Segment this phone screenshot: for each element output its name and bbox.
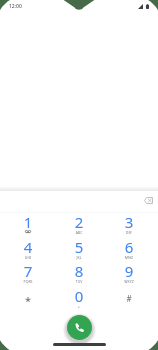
button[interactable]: 4 [3, 236, 53, 260]
staticText: GHI [3, 255, 53, 260]
button[interactable]: 2 [54, 211, 104, 235]
button[interactable]: # [104, 285, 154, 309]
staticText: 7 [3, 261, 53, 281]
button[interactable]: 5 [54, 236, 104, 260]
button[interactable]: * [3, 285, 53, 309]
staticText: MNO [104, 255, 154, 260]
button[interactable]: Call [67, 315, 92, 340]
staticText: 0 [54, 286, 104, 306]
staticText: PQRS [3, 279, 53, 284]
button[interactable]: 0 [54, 285, 104, 309]
button[interactable]: 6 [104, 236, 154, 260]
staticText: 3 [104, 212, 154, 232]
button[interactable]: 1 [3, 211, 53, 235]
staticText: ABC [54, 230, 104, 235]
staticText: JKL [54, 255, 104, 260]
button[interactable]: 9 [104, 260, 154, 284]
staticText: 4 [3, 237, 53, 257]
button[interactable]: 8 [54, 260, 104, 284]
staticText: 12:00 [9, 3, 22, 10]
staticText: 2 [54, 212, 104, 232]
button[interactable]: 3 [104, 211, 154, 235]
staticText: * [3, 293, 53, 308]
staticText: + [54, 304, 104, 309]
staticText: TUV [54, 279, 104, 284]
staticText: 9 [104, 261, 154, 281]
staticText: 1 [3, 212, 53, 232]
staticText: DEF [104, 230, 154, 235]
button[interactable]: 7 [3, 260, 53, 284]
staticText: 5 [54, 237, 104, 257]
staticText: 8 [54, 261, 104, 281]
button[interactable]: Backspace [140, 192, 157, 209]
staticText: 6 [104, 237, 154, 257]
staticText: WXYZ [104, 279, 154, 284]
staticText: # [104, 293, 154, 304]
